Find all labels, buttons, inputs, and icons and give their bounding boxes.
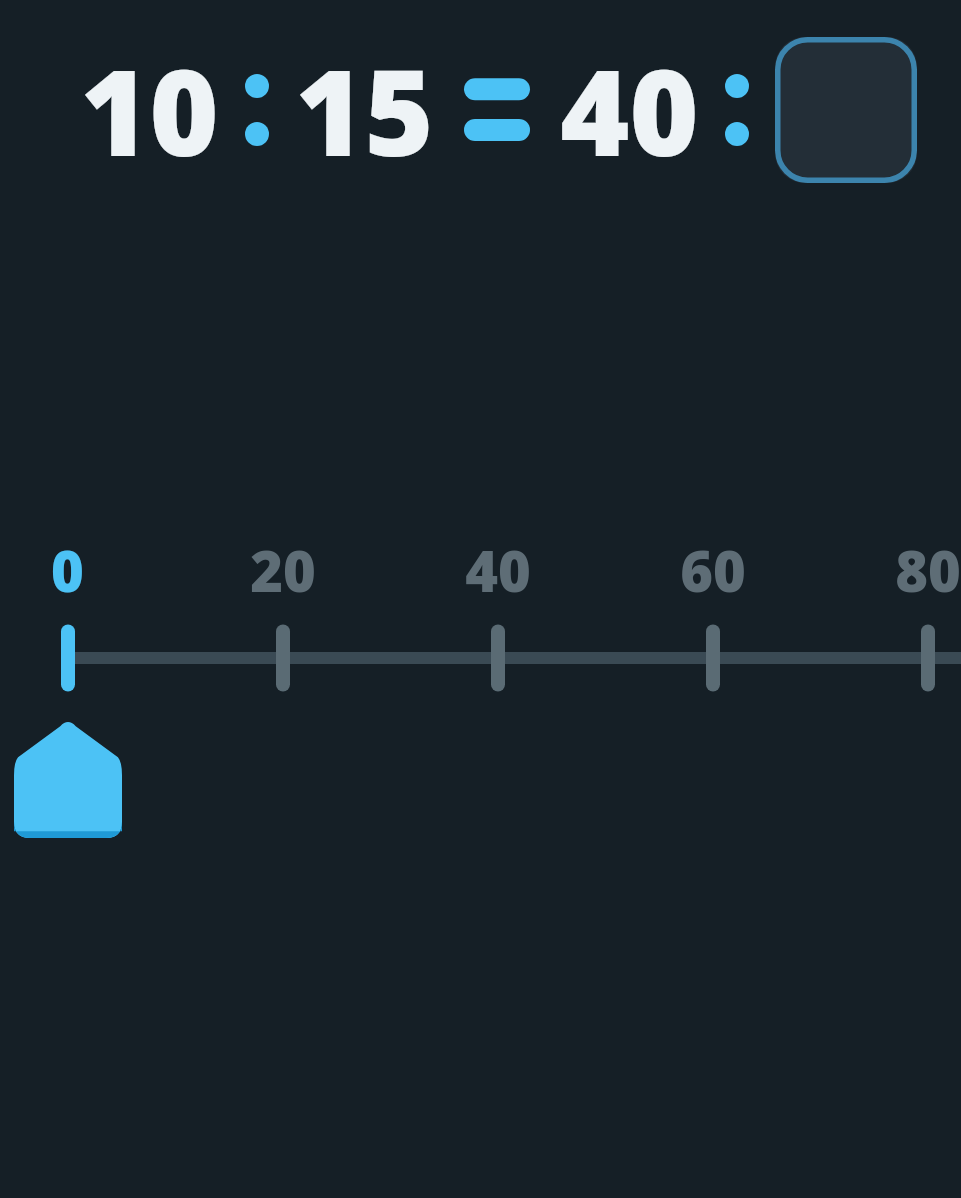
- button[interactable]: 40: [465, 532, 531, 608]
- button[interactable]: Answer input box: [775, 37, 917, 183]
- button[interactable]: 80: [895, 532, 961, 608]
- staticText: 15: [295, 30, 434, 191]
- staticText: 0: [51, 532, 84, 608]
- staticText: 40: [465, 532, 531, 608]
- button[interactable]: 20: [250, 532, 316, 608]
- staticText: 10: [80, 30, 219, 191]
- button[interactable]: 0: [51, 532, 84, 608]
- staticText: 40: [560, 30, 699, 191]
- button[interactable]: 60: [680, 532, 746, 608]
- staticText: 80: [895, 532, 961, 608]
- staticText: 60: [680, 532, 746, 608]
- staticText: 20: [250, 532, 316, 608]
